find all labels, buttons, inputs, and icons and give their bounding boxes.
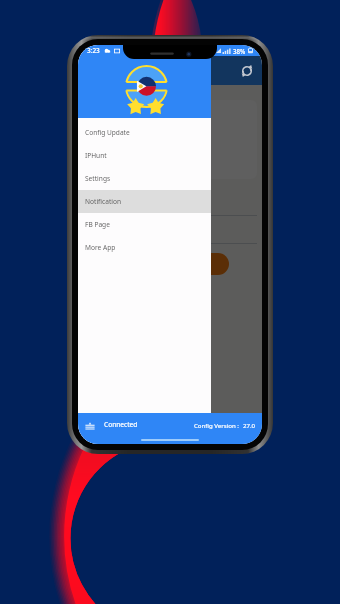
button[interactable]: IPHunt (78, 144, 211, 167)
staticText: IPHunt (85, 151, 107, 160)
staticText: 3:23 (87, 46, 100, 55)
staticText: 38% (233, 47, 246, 55)
button[interactable]: FB Page (78, 213, 211, 236)
staticText: Notification (85, 197, 122, 206)
staticText: Settings (85, 174, 111, 183)
staticText: Config Update (85, 128, 130, 137)
button[interactable]: CONNECT (111, 253, 229, 275)
staticText: FB Page (85, 220, 110, 229)
button[interactable]: More App (78, 236, 211, 259)
staticText: SMART TNT NO LOAD CONFIG 02 (84, 225, 187, 234)
button[interactable]: SMART TNT NO LOAD CONFIG 02 (78, 216, 262, 243)
staticText: 27.0 (243, 421, 256, 429)
button[interactable]: Notification (78, 190, 211, 213)
staticText: Config Version : (194, 421, 239, 429)
button[interactable]: Refresh (239, 63, 255, 79)
staticText: Connected (104, 420, 138, 429)
button[interactable]: Config Update (78, 121, 211, 144)
staticText: More App (85, 243, 116, 252)
button[interactable]: Settings (78, 167, 211, 190)
button[interactable]: Server Details (83, 100, 257, 179)
button[interactable]: Server list (85, 419, 95, 430)
